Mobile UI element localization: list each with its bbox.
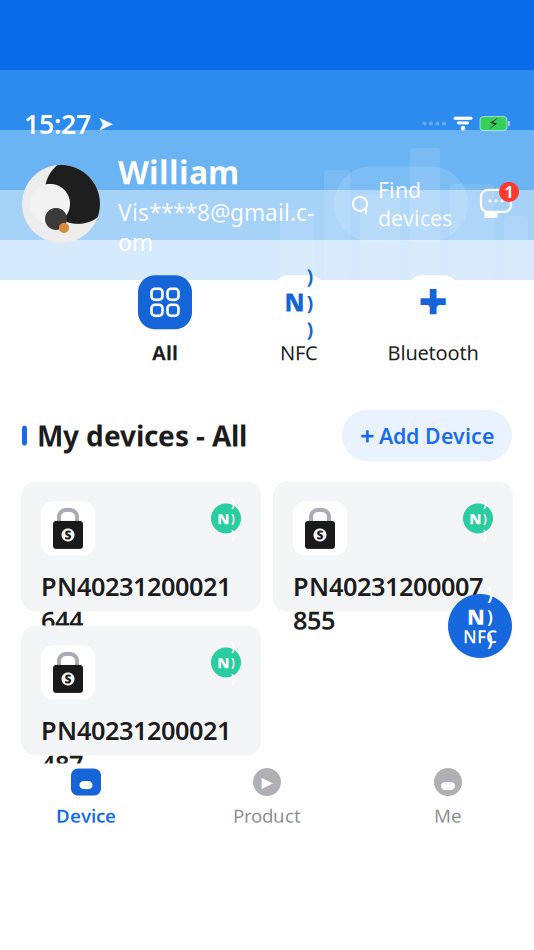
button[interactable]: S (273, 481, 513, 611)
staticText: N (217, 653, 229, 672)
button[interactable]: ▶ (207, 767, 327, 828)
staticText: S (64, 527, 71, 543)
button[interactable]: All (138, 275, 192, 368)
staticText: N (284, 286, 304, 318)
staticText: S (64, 671, 71, 687)
staticText: All (152, 339, 178, 366)
staticText: ➤ (97, 112, 114, 135)
staticText: Vis****8@gmail.com (118, 197, 314, 257)
staticText: Add Device (379, 421, 494, 450)
staticText: ))) (307, 262, 314, 342)
button[interactable]: N (268, 275, 330, 368)
staticText: Device (56, 803, 116, 828)
button[interactable]: ✚ (375, 275, 490, 368)
button[interactable]: S (21, 481, 261, 611)
staticText: PN40231200021644 (41, 569, 231, 637)
staticText: N (469, 509, 481, 528)
staticText: Me (434, 803, 462, 828)
button[interactable]: S (21, 625, 261, 755)
staticText: 15:27 (24, 106, 91, 141)
staticText: N (467, 602, 485, 631)
staticText: My devices - All (37, 417, 247, 454)
staticText: William (118, 151, 239, 193)
button[interactable]: Me (388, 767, 508, 828)
staticText: NFC (463, 625, 497, 648)
staticText: ))) (483, 494, 487, 542)
staticText: ◆ (426, 292, 439, 312)
staticText: ))) (231, 494, 235, 542)
staticText: ✚ (418, 283, 447, 322)
staticText: ))) (487, 582, 493, 651)
staticText: NFC (280, 339, 318, 366)
button[interactable]: Find devices (334, 167, 468, 241)
button[interactable]: NFC scan (448, 594, 512, 658)
staticText: PN40231200021487 (41, 713, 231, 781)
staticText: ⚡︎ (488, 115, 498, 132)
staticText: N (217, 509, 229, 528)
staticText: Bluetooth (387, 339, 478, 366)
button[interactable]: + (342, 410, 512, 461)
button[interactable]: Messages (474, 182, 518, 226)
staticText: Find devices (378, 176, 452, 232)
staticText: 1 (504, 181, 513, 202)
staticText: Product (233, 803, 301, 828)
staticText: + (360, 419, 374, 452)
staticText: ▶ (261, 774, 272, 790)
button[interactable]: Device (26, 767, 146, 828)
staticText: PN40231200007855 (293, 569, 483, 637)
staticText: S (316, 527, 323, 543)
staticText: ))) (231, 638, 235, 686)
